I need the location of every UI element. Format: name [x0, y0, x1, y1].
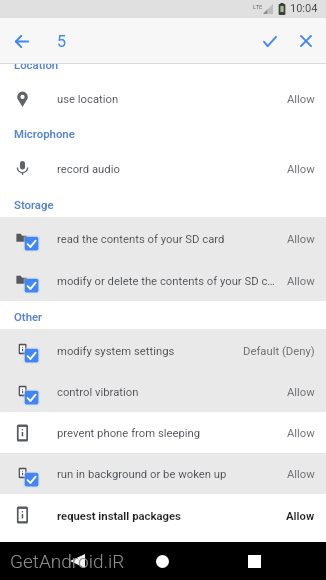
staticText: Allow — [286, 510, 315, 523]
staticText: Microphone — [14, 127, 75, 140]
staticText: modify system settings — [57, 345, 237, 358]
staticText: control vibration — [57, 386, 281, 399]
button[interactable]: use location — [0, 78, 326, 119]
staticText: record audio — [57, 163, 281, 176]
staticText: Location — [14, 64, 59, 71]
staticText: LTE — [253, 3, 263, 10]
staticText: read the contents of your SD card — [57, 233, 281, 246]
staticText: prevent phone from sleeping — [57, 427, 281, 440]
button[interactable]: run in background or be woken up — [0, 453, 326, 494]
staticText: request install packages — [57, 510, 280, 523]
button[interactable]: modify or delete the contents of your SD… — [0, 259, 326, 301]
staticText: Allow — [287, 233, 315, 246]
staticText: run in background or be woken up — [57, 468, 281, 481]
button[interactable]: record audio — [0, 147, 326, 189]
button[interactable]: modify system settings — [0, 329, 326, 371]
staticText: 5 — [57, 32, 66, 51]
button[interactable]: control vibration — [0, 371, 326, 412]
staticText: use location — [57, 93, 281, 106]
button[interactable]: Home — [143, 542, 181, 580]
staticText: Other — [14, 310, 43, 323]
button[interactable]: Recents — [235, 542, 273, 580]
staticText: Allow — [287, 275, 315, 288]
staticText: Allow — [287, 163, 315, 176]
staticText: Storage — [14, 198, 54, 211]
staticText: Allow — [287, 386, 315, 399]
staticText: Allow — [287, 427, 315, 440]
staticText: Allow — [287, 93, 315, 106]
staticText: GetAndroid.iR — [10, 550, 125, 572]
button[interactable]: Back — [50, 542, 104, 580]
staticText: Allow — [287, 468, 315, 481]
button[interactable]: request install packages — [0, 494, 326, 536]
button[interactable]: prevent phone from sleeping — [0, 412, 326, 453]
staticText: 10:04 — [290, 2, 318, 15]
button[interactable]: Close — [285, 18, 326, 64]
staticText: modify or delete the contents of your SD… — [57, 275, 281, 288]
button[interactable]: Confirm — [248, 18, 291, 64]
button[interactable]: read the contents of your SD card — [0, 217, 326, 259]
button[interactable]: Back — [4, 18, 40, 64]
staticText: Default (Deny) — [243, 345, 315, 358]
